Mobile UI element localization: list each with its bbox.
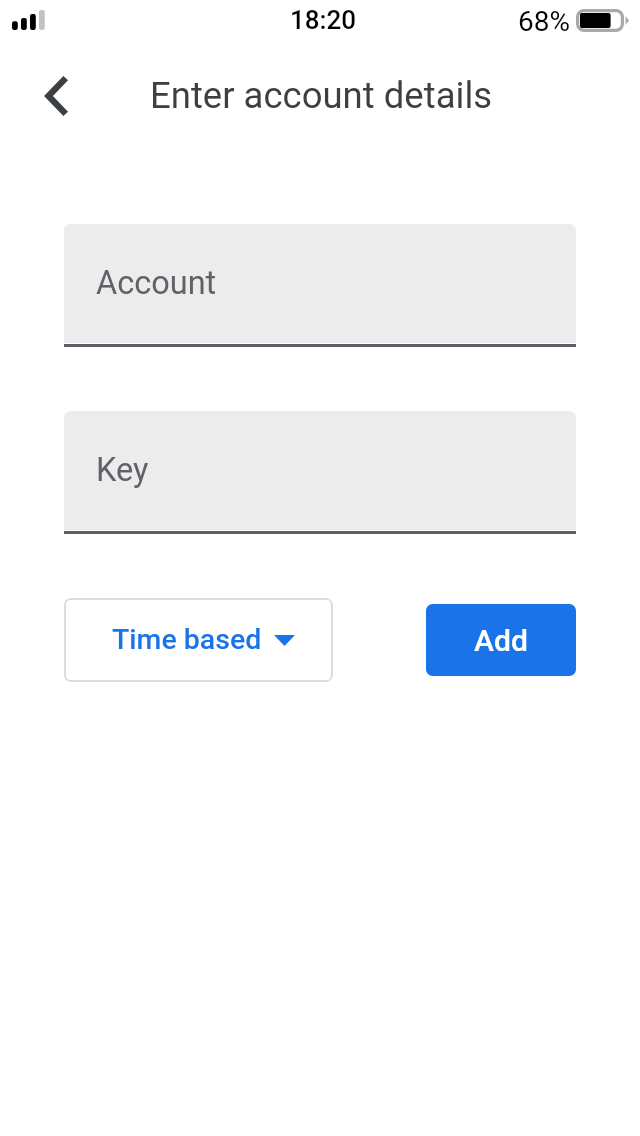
staticText: Account: [96, 264, 217, 302]
staticText: Key: [96, 451, 149, 489]
staticText: 18:20: [290, 5, 357, 35]
button[interactable]: Time based: [64, 598, 333, 682]
button[interactable]: Key: [64, 411, 576, 530]
staticText: Add: [474, 623, 528, 658]
button[interactable]: Add: [426, 604, 576, 676]
button[interactable]: Back: [20, 49, 92, 137]
staticText: Enter account details: [150, 74, 493, 117]
staticText: 68%: [518, 5, 570, 38]
button[interactable]: Account: [64, 224, 576, 343]
staticText: Time based: [112, 623, 262, 656]
